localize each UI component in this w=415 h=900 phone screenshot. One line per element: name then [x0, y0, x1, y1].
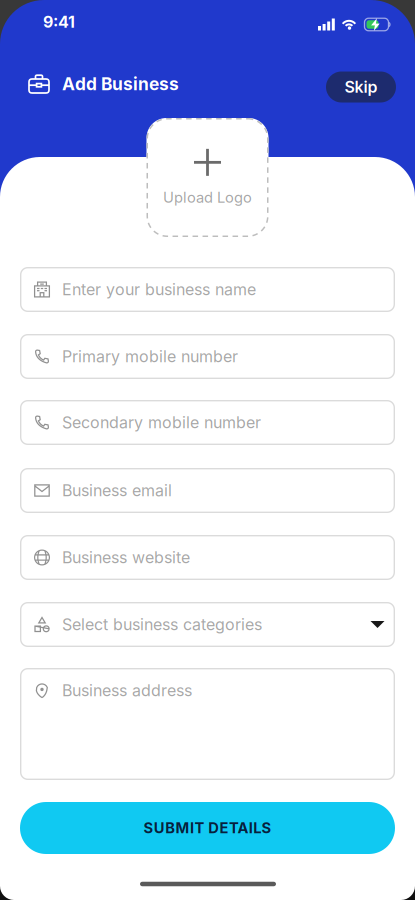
staticText: Secondary mobile number [62, 413, 261, 432]
staticText: Add Business [62, 74, 179, 94]
staticText: Business address [62, 681, 192, 700]
button[interactable]: Skip [326, 71, 396, 102]
button[interactable]: Enter your business name [20, 267, 395, 312]
staticText: SUBMIT DETAILS [143, 819, 272, 837]
button[interactable]: SUBMIT DETAILS [20, 802, 395, 854]
button[interactable]: Secondary mobile number [20, 400, 395, 445]
staticText: Business website [62, 548, 190, 567]
button[interactable]: Select business categories [20, 602, 395, 647]
staticText: 9:41 [43, 13, 75, 31]
button[interactable]: Business website [20, 535, 395, 580]
button[interactable]: Business address [20, 668, 395, 780]
button[interactable]: Primary mobile number [20, 334, 395, 379]
staticText: Skip [344, 78, 377, 96]
staticText: Enter your business name [62, 280, 256, 299]
staticText: Business email [62, 481, 172, 500]
button[interactable]: Business email [20, 468, 395, 513]
button[interactable]: Upload Logo [146, 118, 268, 237]
staticText: Primary mobile number [62, 347, 238, 366]
staticText: Select business categories [62, 615, 262, 634]
staticText: Upload Logo [163, 189, 252, 206]
